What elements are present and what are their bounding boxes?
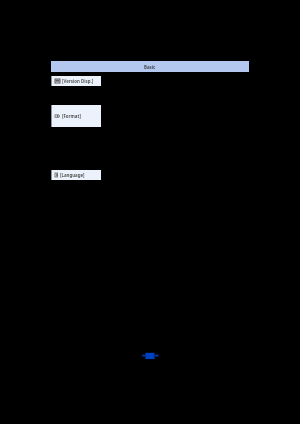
button[interactable]: Basic bbox=[51, 61, 249, 72]
staticText: [Version Disp.] bbox=[62, 78, 94, 84]
staticText: [Format] bbox=[62, 113, 81, 119]
button[interactable]: [Language] bbox=[51, 170, 101, 180]
button[interactable]: [Format] bbox=[51, 105, 101, 127]
staticText: Basic bbox=[144, 64, 156, 70]
button[interactable]: [Version Disp.] bbox=[51, 76, 101, 86]
staticText: [Language] bbox=[60, 172, 85, 178]
button[interactable]: Page 59 bbox=[141, 351, 160, 360]
